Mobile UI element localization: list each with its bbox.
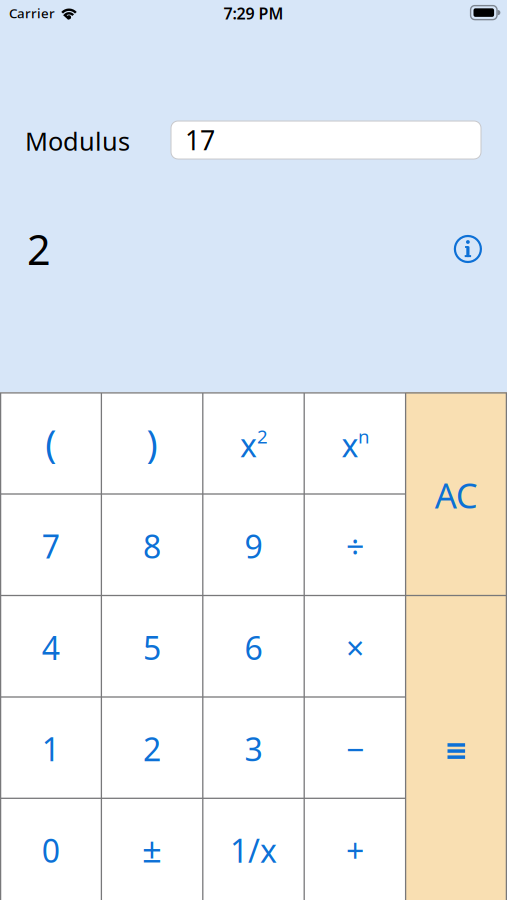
staticText: 2	[143, 728, 161, 770]
staticText: ×	[346, 626, 364, 669]
button[interactable]: 0	[0, 798, 101, 900]
button[interactable]: 9	[203, 494, 304, 595]
button[interactable]: 6	[203, 595, 304, 697]
staticText: AC	[435, 472, 478, 518]
staticText: 0	[42, 829, 60, 872]
staticText: 1/x	[230, 829, 277, 872]
staticText: 2	[257, 424, 268, 449]
button[interactable]: )	[101, 393, 203, 494]
staticText: 3	[244, 728, 262, 770]
button[interactable]: −	[304, 697, 406, 798]
button[interactable]: ±	[101, 798, 203, 900]
staticText: )	[147, 418, 158, 468]
staticText: x	[341, 424, 358, 466]
button[interactable]: x	[203, 393, 304, 494]
button[interactable]	[448, 229, 488, 269]
staticText: +	[346, 829, 364, 872]
button[interactable]: 8	[101, 494, 203, 595]
button[interactable]: x	[304, 393, 406, 494]
staticText: 7	[42, 525, 60, 567]
button[interactable]: 7	[0, 494, 101, 595]
button[interactable]: 5	[101, 595, 203, 697]
button[interactable]: 17	[171, 121, 481, 159]
staticText: −	[346, 728, 364, 770]
button[interactable]: AC	[406, 394, 507, 596]
staticText: Carrier	[9, 4, 55, 22]
button[interactable]: (	[0, 393, 101, 494]
staticText: 6	[244, 626, 262, 669]
staticText: Modulus	[25, 124, 130, 158]
button[interactable]: +	[304, 798, 406, 900]
button[interactable]: 3	[203, 697, 304, 798]
staticText: 9	[244, 525, 262, 567]
button[interactable]: 1/x	[203, 798, 304, 900]
staticText: 17	[185, 122, 215, 158]
staticText: 5	[143, 626, 161, 669]
staticText: 8	[143, 525, 161, 567]
button[interactable]: 2	[101, 697, 203, 798]
button[interactable]	[406, 599, 507, 900]
staticText: n	[358, 424, 370, 449]
staticText: 4	[42, 626, 60, 669]
staticText: 2	[27, 222, 51, 276]
staticText: ±	[142, 826, 162, 872]
staticText: 1	[42, 728, 60, 770]
button[interactable]: 1	[0, 697, 101, 798]
button[interactable]: ×	[304, 595, 406, 697]
staticText: (	[45, 418, 56, 468]
staticText: x	[240, 424, 257, 466]
button[interactable]: 4	[0, 595, 101, 697]
button[interactable]: ÷	[304, 494, 406, 595]
staticText: ÷	[346, 525, 364, 567]
staticText: 7:29 PM	[223, 3, 283, 24]
